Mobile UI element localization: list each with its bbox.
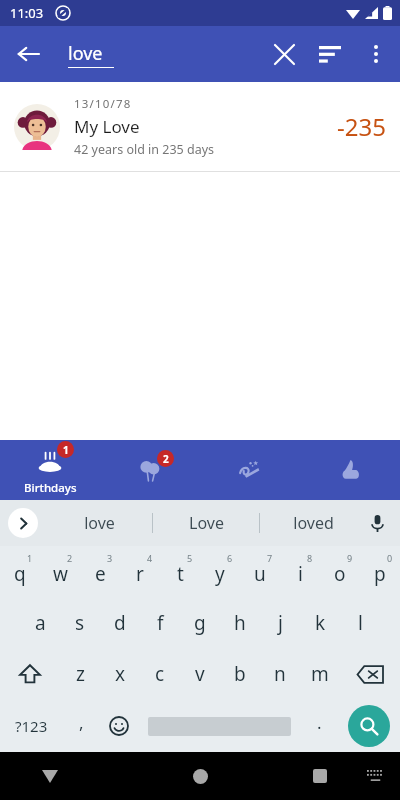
staticText: 1 [27,552,33,564]
button[interactable]: f [140,597,180,648]
button[interactable]: Recents [290,752,350,800]
button[interactable]: love [68,26,114,82]
staticText: m [311,661,329,687]
button[interactable]: Switch keyboard [350,752,400,800]
button[interactable]: e [80,546,120,597]
button[interactable]: Tab [100,440,200,500]
staticText: , [79,711,84,734]
button[interactable]: loved [260,500,366,546]
button[interactable]: Love [153,500,259,546]
staticText: ?123 [15,716,48,736]
button[interactable]: u [240,546,280,597]
button[interactable]: Home [150,752,250,800]
button[interactable]: Backspace [340,648,400,700]
button[interactable]: m [300,648,340,700]
button[interactable]: p [360,546,400,597]
button[interactable]: r [120,546,160,597]
staticText: k [315,610,326,636]
button[interactable]: z [60,648,100,700]
staticText: 1 [63,443,69,457]
staticText: love [84,512,115,534]
button[interactable]: n [260,648,300,700]
staticText: -235 [337,110,386,143]
button[interactable]: Tab [200,440,300,500]
staticText: g [194,610,206,636]
staticText: Love [189,512,224,534]
button[interactable]: o [320,546,360,597]
staticText: i [298,561,303,587]
button[interactable]: Expand suggestions [8,508,38,538]
staticText: o [334,561,346,587]
button[interactable]: c [140,648,180,700]
button[interactable]: Shift [0,648,60,700]
button[interactable]: k [300,597,340,648]
staticText: t [177,561,184,587]
staticText: 42 years old in 235 days [74,141,215,158]
staticText: 13/10/78 [74,96,132,112]
button[interactable]: d [100,597,140,648]
staticText: 3 [107,552,113,564]
button[interactable]: i [280,546,320,597]
button[interactable]: Sort [306,30,354,78]
button[interactable]: w [40,546,80,597]
staticText: j [278,610,283,636]
button[interactable]: Emoji [100,700,138,752]
staticText: r [136,561,144,587]
staticText: d [114,610,126,636]
staticText: p [374,561,386,587]
staticText: y [215,561,225,587]
staticText: 7 [267,552,273,564]
staticText: f [157,610,164,636]
staticText: love [68,41,103,66]
button[interactable]: Tab [300,440,400,500]
staticText: 8 [307,552,313,564]
button[interactable]: q [0,546,40,597]
staticText: v [195,661,205,687]
button[interactable]: Search [338,700,400,752]
button[interactable]: More options [354,32,398,76]
staticText: b [234,661,246,687]
staticText: 2 [67,552,73,564]
staticText: 11:03 [10,4,44,22]
staticText: e [95,561,106,587]
staticText: a [35,610,46,636]
button[interactable]: 13/10/78 [0,82,400,172]
staticText: x [115,661,126,687]
button[interactable]: v [180,648,220,700]
button[interactable]: Back [6,32,50,76]
staticText: z [76,661,85,687]
staticText: 4 [147,552,153,564]
button[interactable]: g [180,597,220,648]
button[interactable]: b [220,648,260,700]
staticText: n [274,661,286,687]
button[interactable]: . [300,700,338,752]
staticText: w [53,561,68,587]
button[interactable]: Birthdays [0,440,100,500]
button[interactable]: x [100,648,140,700]
staticText: Birthdays [24,480,77,496]
button[interactable]: love [46,500,152,546]
button[interactable]: y [200,546,240,597]
staticText: My Love [74,115,140,138]
staticText: loved [293,512,334,534]
button[interactable]: t [160,546,200,597]
button[interactable]: Voice input [360,506,394,540]
button[interactable]: ?123 [0,700,62,752]
button[interactable]: s [60,597,100,648]
staticText: h [234,610,246,636]
button[interactable] [138,700,300,752]
staticText: 5 [187,552,193,564]
button[interactable]: Clear search [262,32,306,76]
staticText: 9 [347,552,353,564]
button[interactable]: j [260,597,300,648]
staticText: 0 [387,552,393,564]
button[interactable]: h [220,597,260,648]
button[interactable]: Hide keyboard [0,752,100,800]
button[interactable]: a [20,597,60,648]
button[interactable]: , [62,700,100,752]
staticText: . [317,711,322,734]
staticText: 6 [227,552,233,564]
button[interactable]: l [340,597,380,648]
staticText: c [155,661,165,687]
staticText: 2 [163,452,169,466]
